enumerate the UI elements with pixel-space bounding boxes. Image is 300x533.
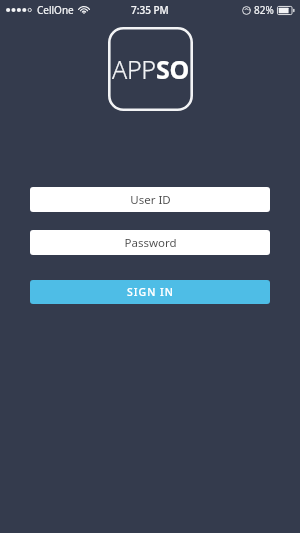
staticText: 7:35 PM	[131, 3, 169, 17]
staticText: SO	[156, 52, 189, 86]
button[interactable]: Password	[30, 230, 270, 255]
staticText: User ID	[130, 192, 171, 208]
staticText: CellOne	[37, 3, 74, 17]
button[interactable]: SIGN IN	[30, 280, 270, 304]
staticText: APP	[112, 52, 156, 86]
button[interactable]: User ID	[30, 187, 270, 212]
staticText: 82%	[254, 3, 274, 17]
staticText: Password	[124, 235, 177, 251]
staticText: SIGN IN	[127, 285, 174, 299]
